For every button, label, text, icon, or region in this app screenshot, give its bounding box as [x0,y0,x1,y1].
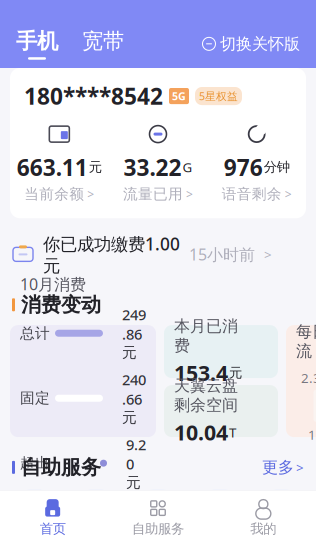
staticText: 切换关怀版 [220,34,300,54]
staticText: 自助服务 [132,521,184,537]
button[interactable]: 976 [207,123,306,203]
staticText: 15小时前 [189,244,255,265]
staticText: 当前余额 [24,185,84,203]
staticText: 33.22 [123,152,181,182]
staticText: 10.04 [174,418,228,446]
staticText: 240.66元 [122,370,146,427]
staticText: > [186,186,193,202]
button[interactable]: 你已成功缴费1.00元 [12,232,304,276]
staticText: 5G [172,89,186,103]
staticText: 分钟 [264,159,290,175]
button[interactable]: 自助服务 [105,499,211,537]
staticText: 总计 [20,324,50,342]
staticText: 976 [224,152,263,182]
staticText: 我的 [250,521,276,537]
staticText: G [182,158,192,176]
staticText: 本月已消费 [174,316,238,356]
staticText: 首页 [40,521,66,537]
staticText: 你已成功缴费1.00元 [43,232,180,276]
staticText: 流量已用 [123,185,183,203]
staticText: 2.3G [301,369,316,387]
staticText: 10月消费 [20,273,86,295]
button[interactable]: 宽带 [82,28,124,60]
staticText: 语音剩余 [222,185,282,203]
staticText: 249.86元 [122,305,146,362]
staticText: 固定 [20,389,50,407]
button[interactable]: 每日流 [286,325,316,437]
button[interactable]: 10月消费 [10,325,156,437]
staticText: 9.20元 [126,435,146,492]
staticText: 153.4 [174,359,228,387]
staticText: 余额明细 [128,534,188,546]
button[interactable]: 首页 [0,499,105,537]
staticText: 每日流 [296,322,316,361]
staticText: 元 [89,159,102,175]
staticText: 套餐余量 [5,534,65,546]
button[interactable]: 套餐余量 [4,490,66,546]
staticText: > [87,186,94,202]
staticText: 180****8542 [24,81,163,111]
staticText: 消费变动 [21,292,101,317]
staticText: 自助服务 [21,455,101,480]
staticText: 超出 [20,454,50,472]
button[interactable]: 663.11 [10,123,109,203]
button[interactable]: 套餐升 [250,490,312,546]
staticText: 更多 [262,457,294,477]
staticText: 5星权益 [199,89,238,103]
button[interactable]: 手机 [16,28,58,60]
staticText: > [296,458,304,476]
button[interactable]: 更多 [262,457,304,477]
button[interactable]: 我的 [211,499,316,537]
staticText: 手机 [16,28,58,54]
staticText: > [285,186,292,202]
button[interactable]: 本月已消费 [164,325,278,378]
staticText: > [264,245,272,263]
button[interactable]: 天翼云盘剩余空间 [164,385,278,437]
button[interactable]: 切换关怀版 [202,34,300,54]
button[interactable]: 余额明细 [127,490,189,546]
staticText: 天翼云盘剩余空间 [174,376,238,415]
staticText: 宽带 [82,28,124,54]
staticText: T [229,423,236,441]
button[interactable]: 33.22 [109,123,207,203]
staticText: 元 [229,365,242,381]
staticText: 套餐升 [259,534,304,546]
staticText: 663.11 [17,152,88,182]
staticText: 16 [308,426,316,443]
